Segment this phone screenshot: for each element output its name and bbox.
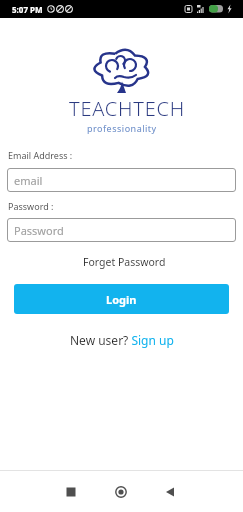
button[interactable]: Password — [7, 218, 236, 242]
staticText: Password — [14, 223, 64, 238]
button[interactable] — [47, 471, 95, 512]
staticText: professionality — [87, 122, 157, 134]
staticText: email — [14, 173, 43, 188]
button[interactable]: Login — [14, 284, 229, 314]
staticText: 5:07 PM — [12, 4, 43, 15]
staticText: Password : — [8, 200, 243, 212]
staticText: Email Address : — [8, 149, 243, 161]
button[interactable]: email — [7, 168, 236, 192]
button[interactable] — [97, 471, 145, 512]
staticText: TEACHTECH — [69, 95, 186, 122]
button[interactable]: Forget Password — [83, 255, 166, 269]
staticText: Login — [106, 292, 137, 307]
button[interactable] — [146, 471, 194, 512]
button[interactable]: New user? Sign up — [70, 332, 174, 348]
